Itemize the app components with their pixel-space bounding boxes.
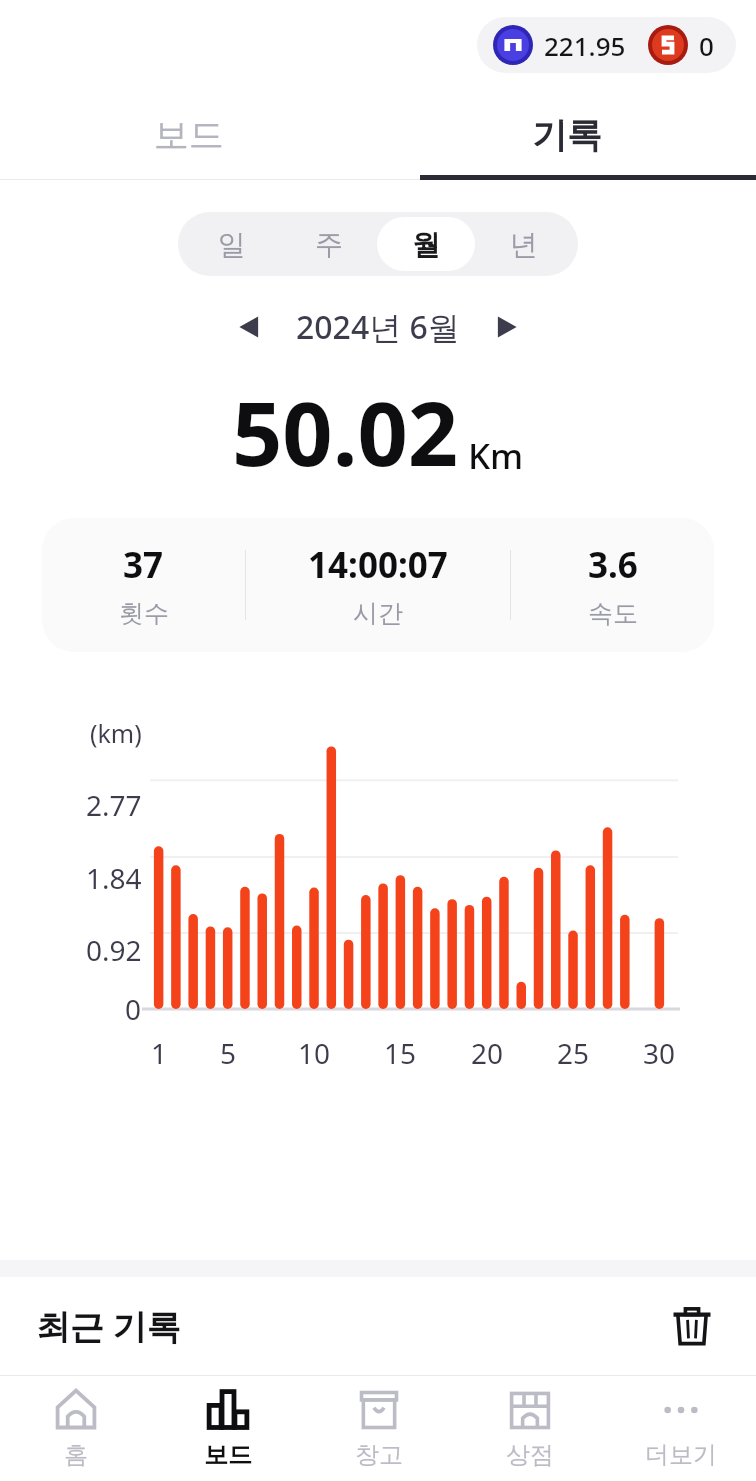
staticText: 시간 <box>353 598 403 629</box>
button[interactable]: 일 <box>183 217 280 271</box>
button[interactable]: 창고 <box>303 1376 454 1481</box>
staticText: 속도 <box>588 598 638 629</box>
staticText: Km <box>468 432 524 480</box>
staticText: 더보기 <box>645 1440 717 1470</box>
button[interactable]: 보드 <box>0 90 378 180</box>
staticText: 기록 <box>532 113 602 157</box>
button[interactable]: 보드 <box>152 1376 303 1481</box>
staticText: 15 <box>384 1034 417 1072</box>
button[interactable]: 37 <box>42 518 714 652</box>
staticText: 홈 <box>64 1440 88 1470</box>
staticText: 30 <box>643 1034 676 1072</box>
staticText: 최근 기록 <box>36 1303 181 1349</box>
staticText: 1.84 <box>86 859 142 897</box>
staticText: (km) <box>90 716 142 750</box>
staticText: 221.95 <box>544 28 626 63</box>
staticText: 주 <box>315 227 343 262</box>
button[interactable]: 년 <box>475 217 573 271</box>
button[interactable]: 주 <box>280 217 377 271</box>
staticText: 3.6 <box>588 541 638 589</box>
staticText: 14:00:07 <box>308 541 448 589</box>
button[interactable]: Previous month <box>224 302 274 352</box>
button[interactable]: Next month <box>482 302 532 352</box>
button[interactable]: Delete records <box>664 1298 720 1354</box>
button[interactable]: 상점 <box>454 1376 605 1481</box>
staticText: 횟수 <box>119 598 169 629</box>
staticText: 37 <box>123 541 164 589</box>
staticText: 일 <box>218 227 246 262</box>
staticText: 보드 <box>154 113 224 157</box>
button[interactable]: 월 <box>377 217 475 271</box>
staticText: 50.02 <box>232 372 459 492</box>
staticText: 5 <box>220 1034 237 1072</box>
staticText: 1 <box>151 1034 168 1072</box>
staticText: 25 <box>557 1034 590 1072</box>
staticText: 월 <box>412 227 440 262</box>
staticText: 0 <box>699 28 714 63</box>
button[interactable]: 더보기 <box>605 1376 756 1481</box>
staticText: 창고 <box>355 1440 403 1470</box>
staticText: 2.77 <box>86 786 142 824</box>
staticText: 보드 <box>204 1440 252 1470</box>
staticText: 2024년 6월 <box>296 305 460 349</box>
button[interactable]: 221.95 <box>477 17 736 73</box>
button[interactable]: 홈 <box>0 1376 152 1481</box>
staticText: 0 <box>125 990 142 1028</box>
button[interactable]: 기록 <box>378 90 756 180</box>
staticText: 20 <box>471 1034 504 1072</box>
staticText: 상점 <box>506 1440 554 1470</box>
staticText: 0.92 <box>86 931 142 969</box>
staticText: 10 <box>298 1034 331 1072</box>
staticText: 년 <box>510 227 538 262</box>
